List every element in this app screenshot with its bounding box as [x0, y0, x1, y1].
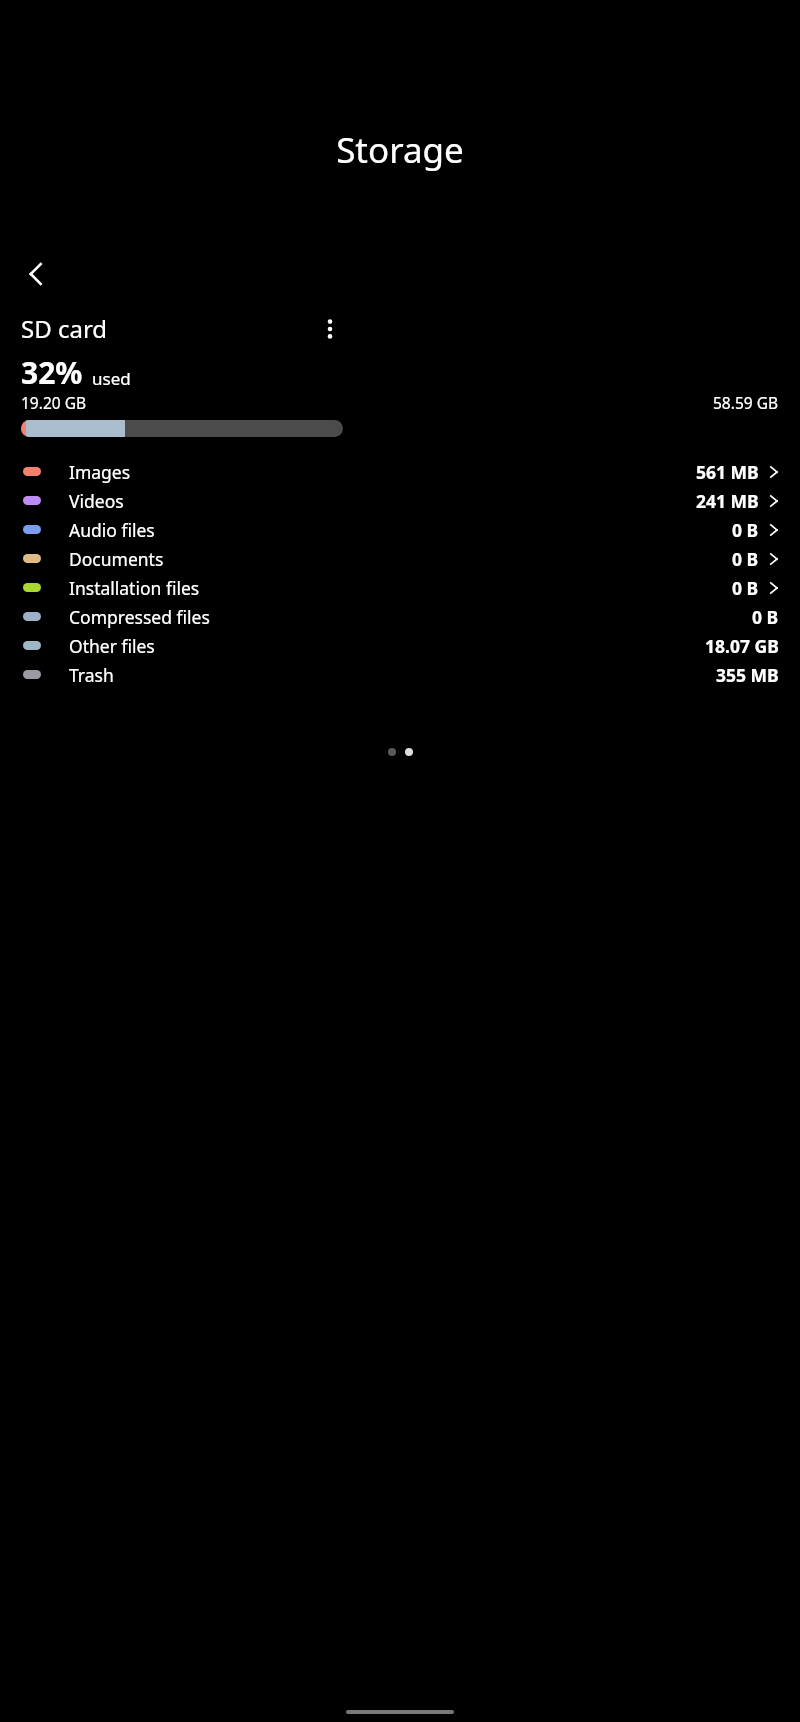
button[interactable]: Installation files	[0, 573, 800, 602]
staticText: Audio files	[69, 518, 155, 542]
staticText: 0 B	[732, 547, 759, 571]
button[interactable]: Trash	[0, 660, 800, 689]
button[interactable]: Page 2	[405, 748, 413, 756]
staticText: 355 MB	[716, 663, 779, 687]
staticText: 0 B	[732, 576, 759, 600]
staticText: Videos	[69, 489, 124, 513]
staticText: Trash	[69, 663, 114, 687]
button[interactable]: Page 1	[388, 748, 396, 756]
staticText: 32%	[21, 352, 83, 393]
staticText: Storage	[0, 126, 800, 174]
staticText: Other files	[69, 634, 155, 658]
button[interactable]: Images	[0, 457, 800, 486]
staticText: SD card	[21, 312, 108, 345]
button[interactable]: More options	[307, 306, 353, 352]
button[interactable]: Documents	[0, 544, 800, 573]
staticText: Compressed files	[69, 605, 210, 629]
button[interactable]: Compressed files	[0, 602, 800, 631]
button[interactable]: Back	[10, 248, 62, 300]
staticText: 241 MB	[696, 489, 759, 513]
staticText: 0 B	[732, 518, 759, 542]
staticText: Images	[69, 460, 131, 484]
staticText: 18.07 GB	[705, 634, 779, 658]
button[interactable]: Other files	[0, 631, 800, 660]
staticText: 561 MB	[696, 460, 759, 484]
staticText: Installation files	[69, 576, 200, 600]
staticText: Documents	[69, 547, 164, 571]
staticText: 58.59 GB	[713, 392, 779, 413]
button[interactable]: Audio files	[0, 515, 800, 544]
staticText: 19.20 GB	[21, 392, 87, 413]
staticText: 0 B	[752, 605, 779, 629]
button[interactable]: Videos	[0, 486, 800, 515]
staticText: used	[92, 367, 131, 390]
